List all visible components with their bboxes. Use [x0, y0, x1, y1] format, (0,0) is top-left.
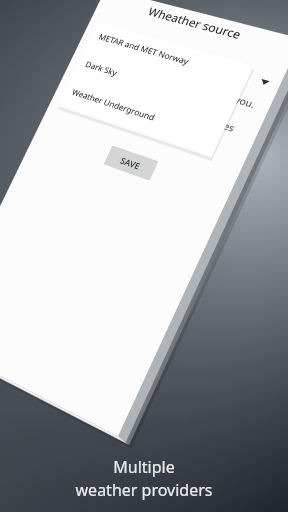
button[interactable]: Weather source dropdown	[16, 46, 228, 74]
staticText: Multiple weather providers	[0, 456, 288, 501]
staticText: Weather Underground	[20, 130, 127, 144]
staticText: Dark Sky	[20, 92, 61, 106]
button[interactable]: METAR and MET Norway	[10, 45, 205, 83]
staticText: Wheather source	[0, 4, 240, 23]
staticText: METAR and MET Norway	[20, 54, 135, 68]
staticText: Select the weather source closest to you…	[14, 80, 228, 129]
button[interactable]: Dark Sky	[10, 83, 205, 121]
button[interactable]: Weather Underground	[10, 121, 205, 159]
